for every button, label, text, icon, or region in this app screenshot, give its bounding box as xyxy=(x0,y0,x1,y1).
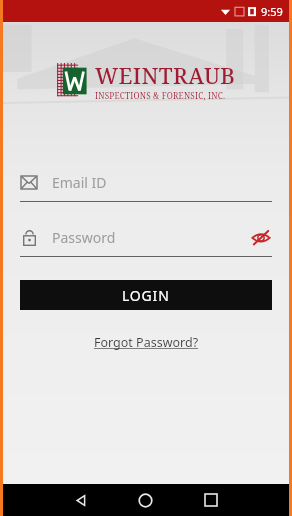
staticText: 9:59 xyxy=(261,4,283,19)
staticText: LOGIN xyxy=(122,286,170,305)
button[interactable]: Home xyxy=(113,484,178,516)
button[interactable]: Back xyxy=(49,484,113,516)
staticText: Email ID xyxy=(52,173,272,192)
button[interactable]: Forgot Password? xyxy=(86,330,207,355)
button[interactable]: LOGIN xyxy=(20,280,272,310)
staticText: WEINTRAUB xyxy=(95,60,236,90)
button[interactable]: Show password xyxy=(250,226,272,248)
button[interactable]: Email ID xyxy=(20,167,272,202)
button[interactable]: Password xyxy=(20,222,272,257)
staticText: Password xyxy=(52,228,250,247)
button[interactable]: Recent apps xyxy=(178,484,243,516)
staticText: INSPECTIONS & FORENSIC, INC. xyxy=(95,90,226,101)
